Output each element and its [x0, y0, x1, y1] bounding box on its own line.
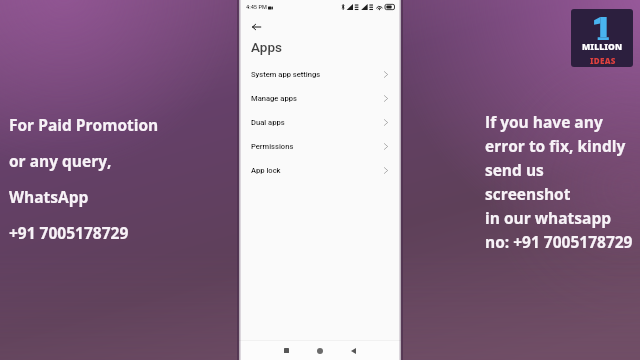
staticText: send us [485, 159, 544, 180]
button[interactable]: System app settings [239, 62, 401, 86]
staticText: or any query, [9, 150, 112, 171]
button[interactable]: 1 Million Ideas logo [571, 9, 633, 67]
button[interactable]: Permissions [239, 134, 401, 158]
button[interactable]: App lock [239, 158, 401, 182]
button[interactable]: Recent apps [273, 343, 299, 358]
button[interactable]: Home [307, 343, 333, 358]
staticText: If you have any [485, 111, 603, 132]
staticText: in our whatsapp [485, 207, 612, 228]
staticText: IDEAS [590, 55, 616, 66]
staticText: WhatsApp [9, 186, 89, 207]
staticText: error to fix, kindly [485, 135, 626, 156]
staticText: Dual apps [251, 118, 285, 127]
staticText: System app settings [251, 70, 321, 79]
staticText: +91 7005178729 [9, 222, 129, 243]
button[interactable]: Dual apps [239, 110, 401, 134]
button[interactable]: Back [340, 343, 366, 358]
staticText: 4:45 PM [246, 4, 267, 11]
staticText: Permissions [251, 142, 294, 151]
staticText: Apps [251, 39, 282, 55]
button[interactable]: Manage apps [239, 86, 401, 110]
staticText: App lock [251, 166, 281, 175]
staticText: screenshot [485, 183, 571, 204]
staticText: For Paid Promotion [9, 114, 159, 135]
staticText: no: +91 7005178729 [485, 231, 633, 252]
staticText: Manage apps [251, 94, 297, 103]
button[interactable]: Back [239, 16, 401, 34]
staticText: MILLION [582, 41, 623, 53]
